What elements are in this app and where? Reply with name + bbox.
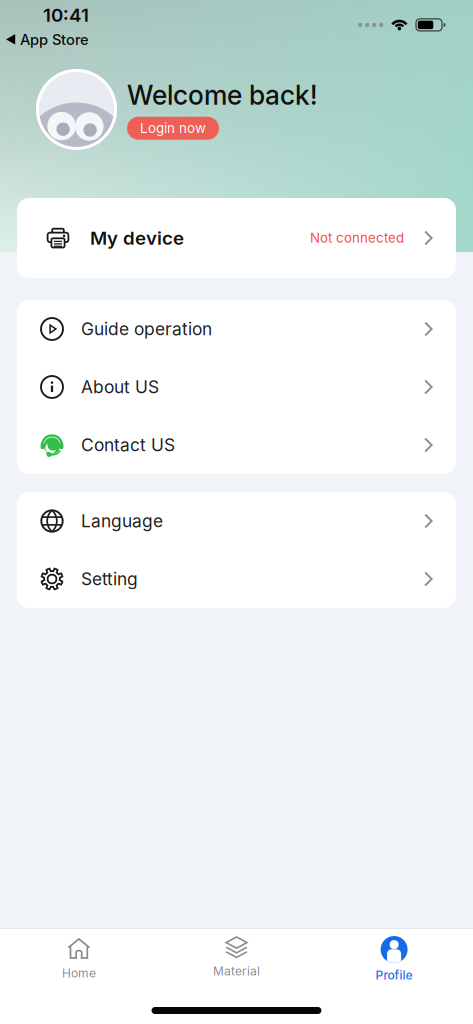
button[interactable]: Profile bbox=[315, 929, 473, 989]
staticText: Material bbox=[213, 964, 260, 978]
button[interactable]: Back to App Store bbox=[0, 0, 89, 48]
button[interactable]: Contact US bbox=[17, 416, 456, 474]
staticText: Contact US bbox=[81, 435, 175, 455]
staticText: Welcome back! bbox=[127, 79, 317, 111]
staticText: Not connected bbox=[310, 230, 404, 246]
staticText: Guide operation bbox=[81, 319, 212, 339]
button[interactable]: Home bbox=[0, 929, 158, 989]
staticText: 10:41 bbox=[43, 4, 89, 26]
staticText: Home bbox=[62, 966, 96, 980]
button[interactable]: Material bbox=[158, 929, 315, 989]
button[interactable]: Login now bbox=[127, 117, 219, 140]
staticText: My device bbox=[90, 227, 184, 249]
staticText: Language bbox=[81, 511, 163, 531]
button[interactable]: About US bbox=[17, 358, 456, 416]
button[interactable]: Language bbox=[17, 492, 456, 550]
staticText: About US bbox=[81, 377, 159, 397]
button[interactable]: My device bbox=[17, 198, 456, 278]
staticText: App Store bbox=[20, 31, 89, 48]
staticText: Profile bbox=[376, 968, 413, 982]
staticText: Setting bbox=[81, 569, 138, 589]
staticText: Login now bbox=[140, 120, 206, 136]
button[interactable]: Setting bbox=[17, 550, 456, 608]
button[interactable]: Guide operation bbox=[17, 300, 456, 358]
